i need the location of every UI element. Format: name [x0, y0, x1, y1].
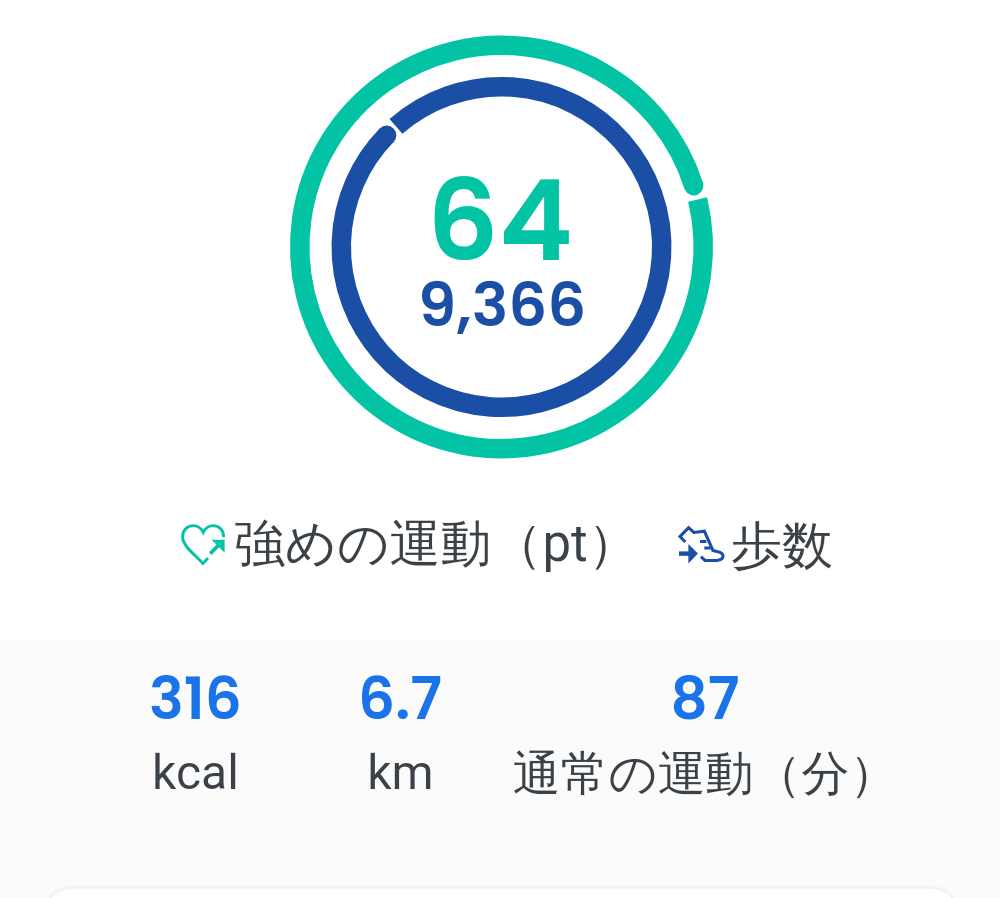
other: Steps [676, 523, 726, 565]
button[interactable]: Steps [676, 514, 833, 578]
staticText: km [367, 744, 434, 800]
staticText: 強めの運動（pt） [234, 512, 639, 576]
button[interactable]: 87 [512, 658, 898, 804]
button[interactable]: Activity rings: 64 heart points, 9,366 s… [290, 35, 713, 458]
button[interactable]: 316 [149, 658, 242, 800]
staticText: 通常の運動（分） [512, 744, 898, 804]
staticText: kcal [152, 744, 239, 800]
staticText: 9,366 [418, 262, 587, 347]
staticText: 6.7 [358, 658, 442, 739]
staticText: 歩数 [731, 514, 833, 578]
staticText: 87 [670, 658, 740, 739]
button[interactable]: 6.7 [358, 658, 442, 800]
staticText: 316 [149, 658, 242, 739]
staticText: 64 [427, 142, 573, 299]
button[interactable]: Heart Points [181, 512, 639, 576]
other: Heart Points [181, 524, 225, 565]
